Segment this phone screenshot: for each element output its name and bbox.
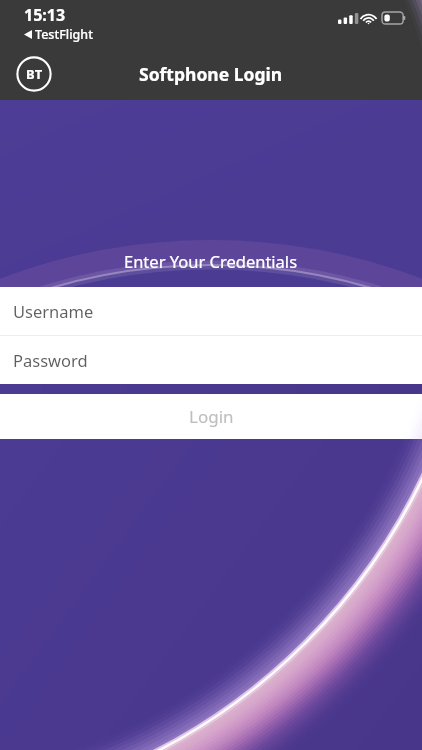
staticText: TestFlight bbox=[35, 26, 93, 43]
button[interactable]: BT home bbox=[16, 56, 52, 92]
staticText: Login bbox=[189, 405, 234, 428]
button[interactable]: Username bbox=[0, 287, 422, 336]
button[interactable]: Password bbox=[0, 336, 422, 384]
button[interactable]: Login bbox=[0, 394, 422, 439]
staticText: Softphone Login bbox=[139, 62, 283, 86]
staticText: Password bbox=[13, 349, 88, 371]
staticText: 15:13 bbox=[24, 4, 66, 26]
staticText: BT bbox=[26, 65, 43, 83]
staticText: Enter Your Credentials bbox=[124, 250, 298, 272]
staticText: Username bbox=[13, 300, 94, 322]
